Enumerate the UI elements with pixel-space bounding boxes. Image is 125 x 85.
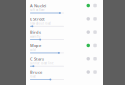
button[interactable]: Options (93, 57, 97, 60)
staticText: A Nuclei (30, 3, 46, 8)
staticText: new about road (30, 22, 51, 25)
staticText: Mope (30, 43, 41, 48)
button[interactable]: Options (93, 30, 97, 34)
button[interactable]: Options (93, 4, 97, 7)
button[interactable]: Options (93, 70, 97, 74)
button[interactable]: Play (86, 17, 90, 21)
button[interactable]: Options (93, 17, 97, 21)
button[interactable]: Pause (86, 4, 90, 7)
button[interactable]: Play (86, 70, 90, 74)
button[interactable]: Play (86, 57, 90, 60)
staticText: road (30, 75, 36, 78)
staticText: cold (30, 48, 36, 52)
staticText: Birds (30, 30, 41, 35)
staticText: sunrise coast line (30, 61, 54, 65)
staticText: C Stars (30, 56, 44, 61)
staticText: E Street (30, 16, 45, 22)
button[interactable]: Options (93, 44, 97, 47)
staticText: warm fly (30, 35, 40, 38)
staticText: soft as flare (30, 8, 45, 12)
staticText: Bruce (30, 69, 42, 75)
button[interactable]: Pause (86, 44, 90, 47)
button[interactable]: Play (86, 30, 90, 34)
